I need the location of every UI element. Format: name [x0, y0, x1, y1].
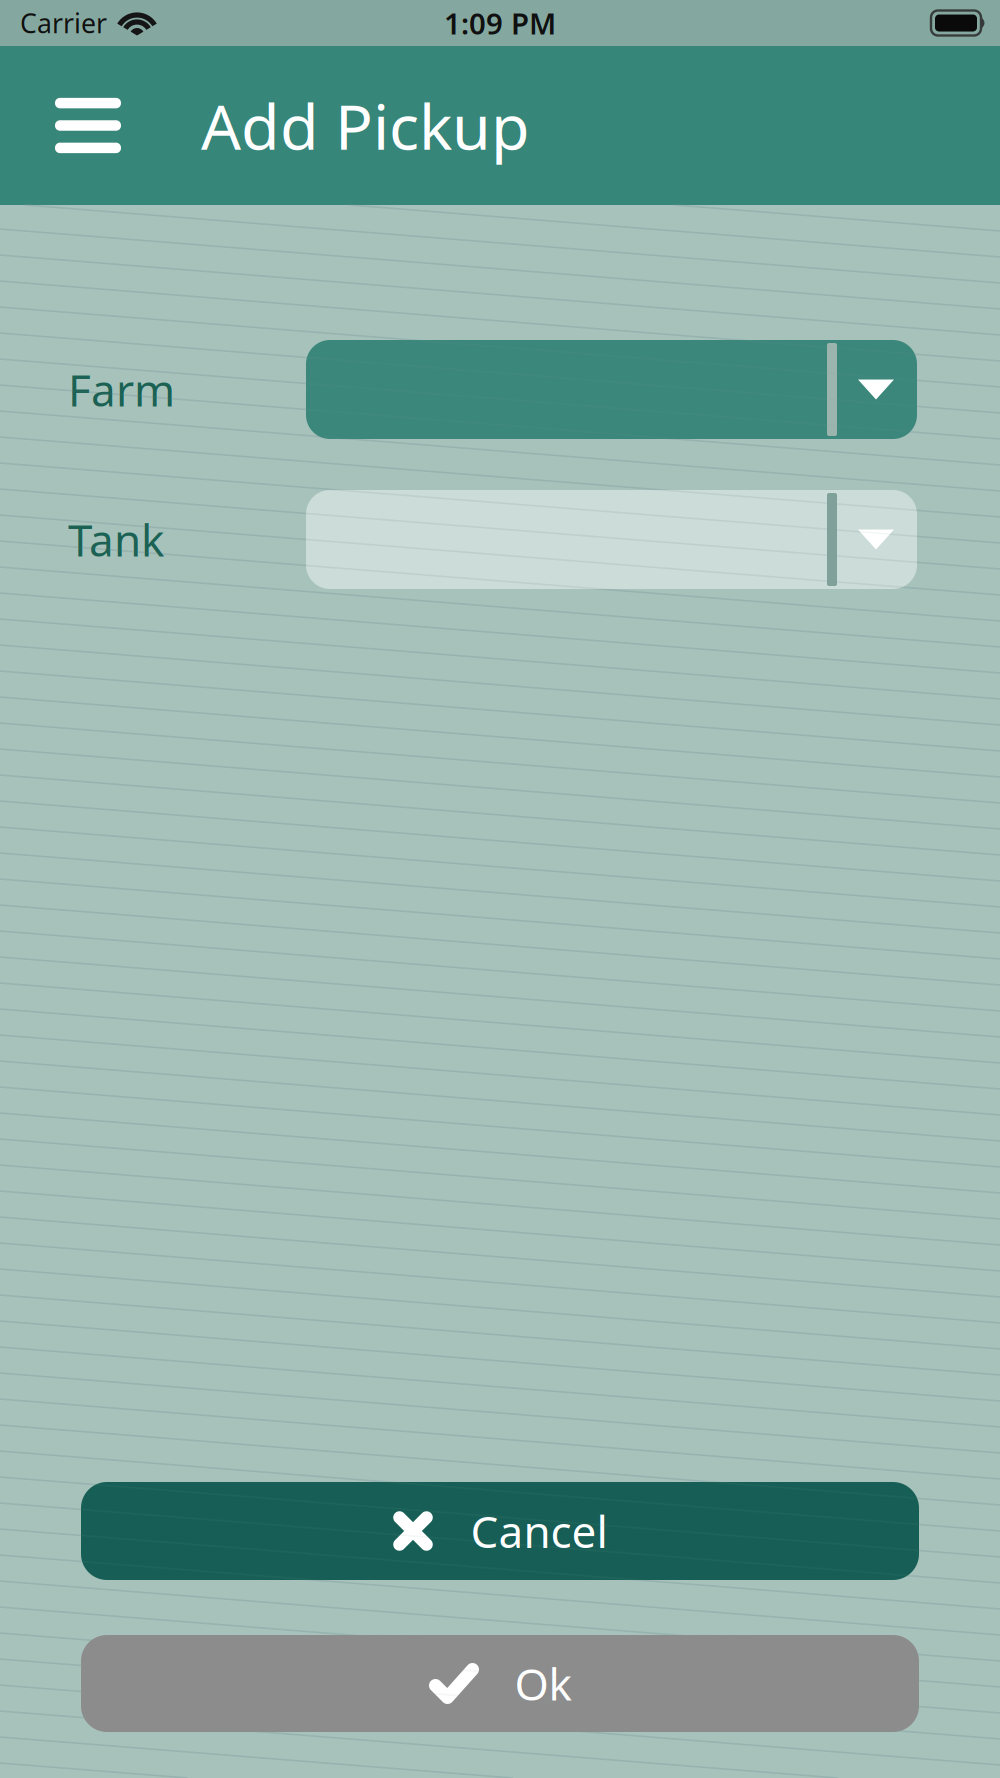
staticText: Farm — [68, 360, 175, 419]
button[interactable]: Farm picker — [306, 340, 917, 439]
staticText: Ok — [514, 1654, 571, 1713]
staticText: Tank — [68, 510, 164, 569]
staticText: 1:09 PM — [444, 3, 556, 42]
button[interactable]: Ok — [81, 1635, 919, 1732]
button[interactable]: Menu — [0, 78, 121, 173]
button[interactable]: Tank picker — [306, 490, 917, 589]
staticText: Carrier — [20, 5, 107, 41]
staticText: Cancel — [470, 1502, 607, 1560]
staticText: Add Pickup — [201, 84, 530, 167]
button[interactable]: Cancel — [81, 1482, 919, 1580]
